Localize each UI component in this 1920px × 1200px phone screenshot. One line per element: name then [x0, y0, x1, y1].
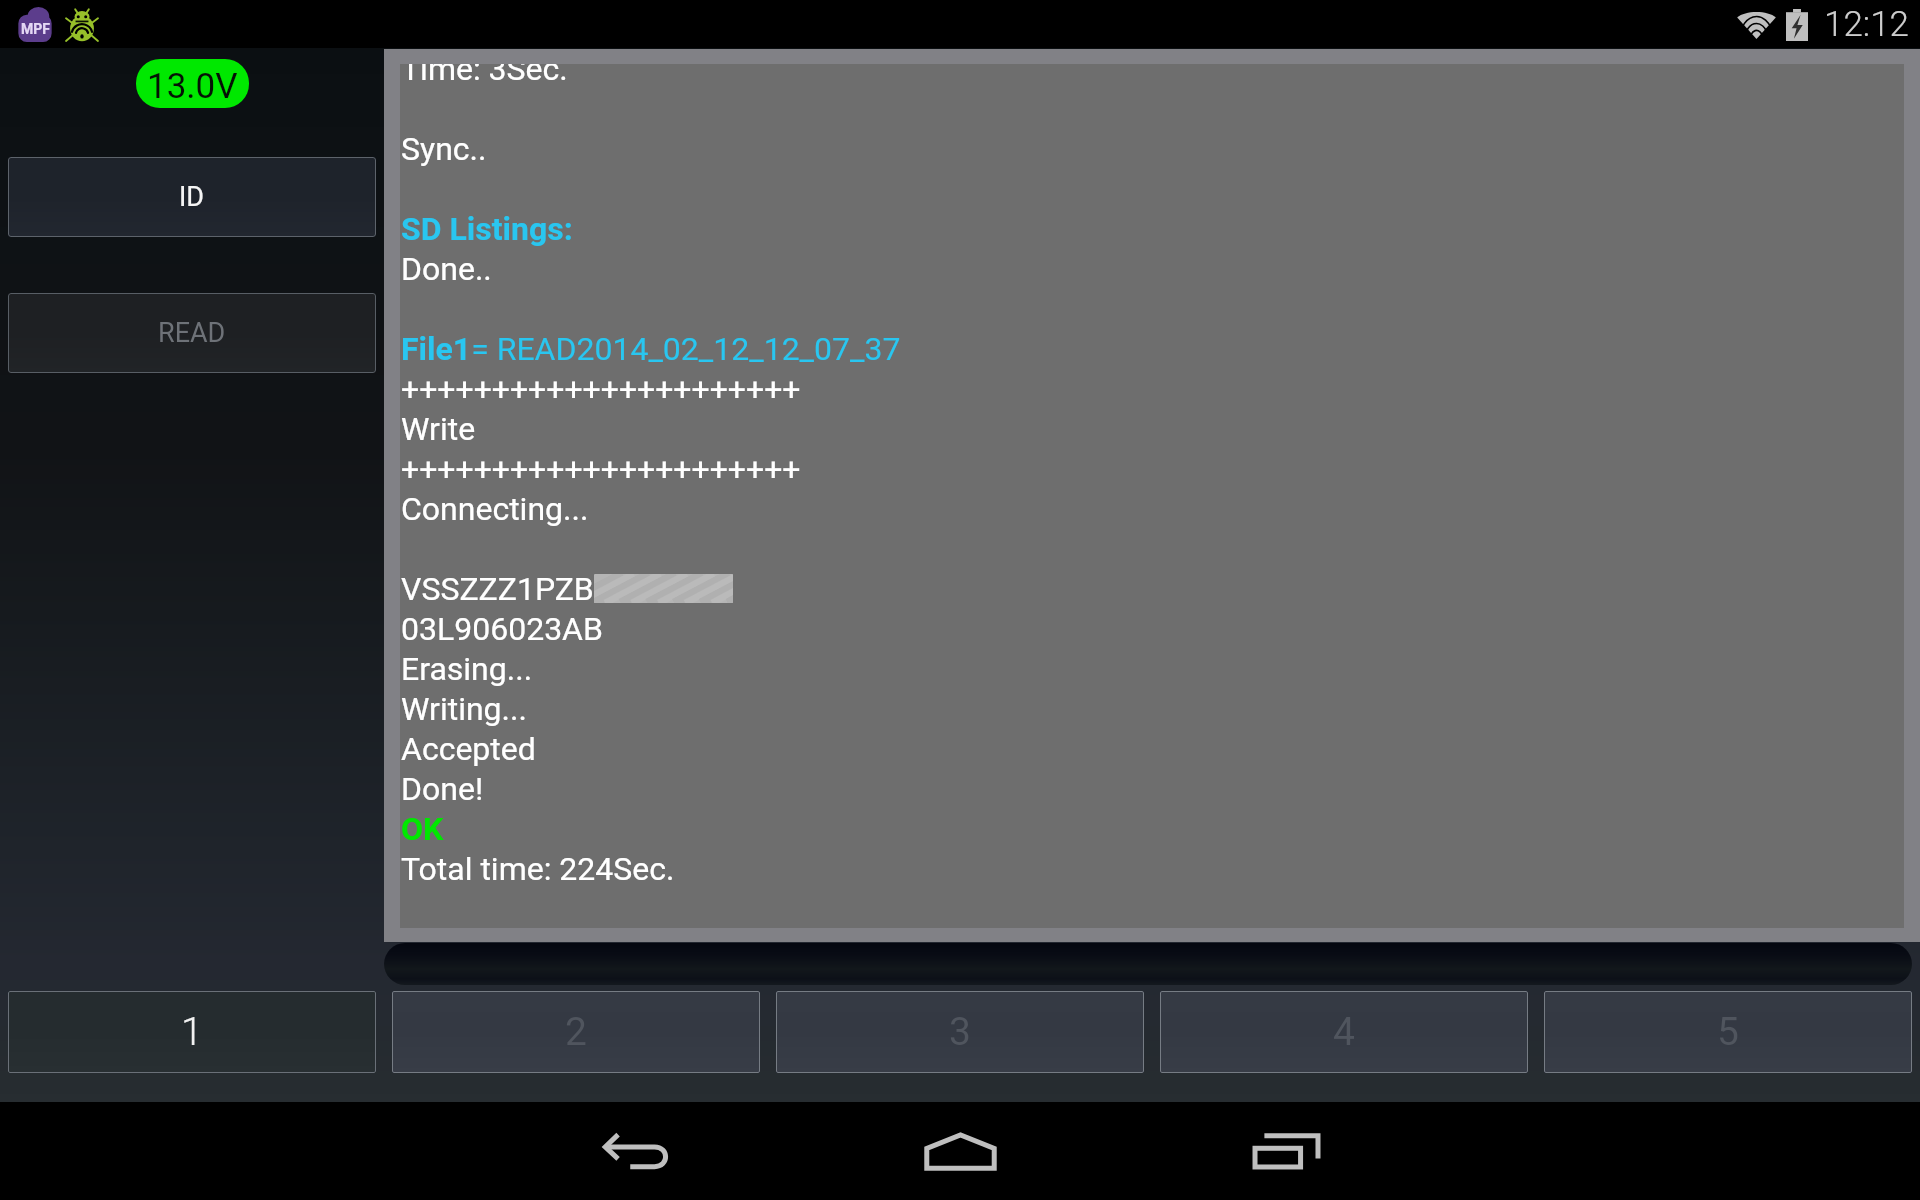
- button[interactable]: Back: [588, 1103, 684, 1199]
- staticText: ID: [179, 181, 205, 213]
- button[interactable]: 3: [776, 991, 1144, 1073]
- staticText: 13.0V: [147, 66, 238, 107]
- staticText: 1: [181, 1009, 203, 1055]
- button[interactable]: 5: [1544, 991, 1912, 1073]
- staticText: Total time: 224Sec.: [401, 850, 675, 888]
- button[interactable]: ID: [8, 157, 376, 237]
- staticText: OK: [401, 810, 444, 848]
- button[interactable]: 4: [1160, 991, 1528, 1073]
- staticText: 3: [949, 1009, 971, 1055]
- staticText: Connecting...: [401, 490, 589, 528]
- staticText: File1= READ2014_02_12_12_07_37: [401, 330, 901, 368]
- staticText: 4: [1333, 1009, 1355, 1055]
- staticText: Sync..: [401, 130, 487, 168]
- staticText: 5: [1717, 1009, 1739, 1055]
- staticText: Erasing...: [401, 650, 533, 688]
- staticText: ++++++++++++++++++++++: [401, 450, 801, 488]
- staticText: 03L906023AB: [401, 610, 603, 648]
- staticText: SD Listings:: [401, 210, 573, 248]
- staticText: Done..: [401, 250, 492, 288]
- staticText: Writing...: [401, 690, 527, 728]
- button[interactable]: Home: [912, 1103, 1008, 1199]
- staticText: MPF: [21, 21, 50, 37]
- staticText: 12:12: [1824, 4, 1910, 45]
- button[interactable]: Recent apps: [1238, 1103, 1334, 1199]
- staticText: Write: [401, 410, 476, 448]
- button[interactable]: READ: [8, 293, 376, 373]
- staticText: VSSZZZ1PZB: [401, 570, 594, 608]
- button[interactable]: 1: [8, 991, 376, 1073]
- staticText: Time: 3Sec.: [401, 64, 568, 88]
- staticText: Done!: [401, 770, 484, 808]
- staticText: Accepted: [401, 730, 536, 768]
- staticText: 2: [565, 1009, 587, 1055]
- button[interactable]: 2: [392, 991, 760, 1073]
- staticText: READ: [158, 317, 226, 349]
- staticText: ++++++++++++++++++++++: [401, 370, 801, 408]
